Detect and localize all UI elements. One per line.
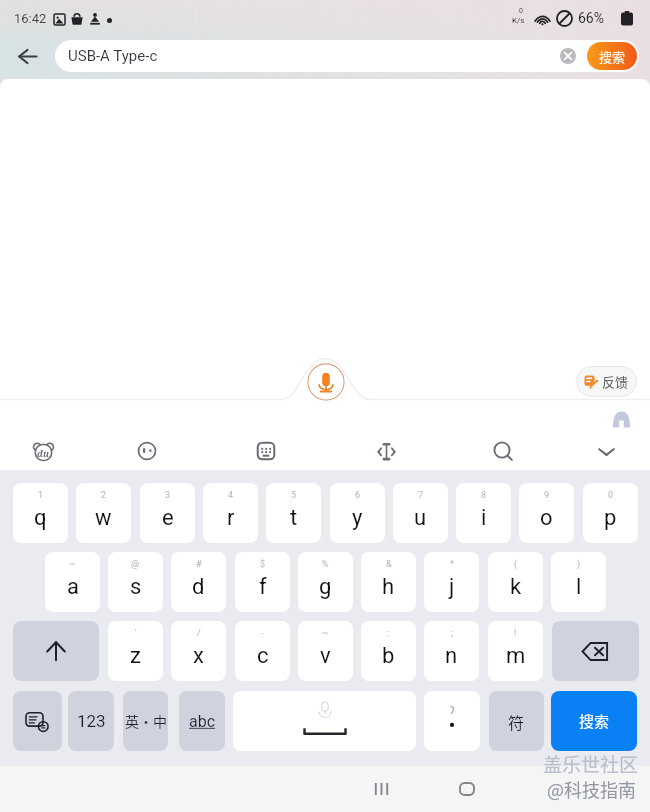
button[interactable]: ) <box>551 552 606 612</box>
button[interactable]: 123 <box>68 691 114 751</box>
button[interactable]: 5 <box>266 483 321 543</box>
staticText: o <box>540 505 553 531</box>
staticText: & <box>386 559 392 570</box>
button[interactable]: 搜索 <box>551 691 637 751</box>
staticText: # <box>196 559 202 570</box>
staticText: z <box>130 643 141 669</box>
staticText: l <box>576 574 582 600</box>
staticText: 7 <box>418 490 424 501</box>
button[interactable]: Baidu input <box>21 429 65 473</box>
button[interactable]: 4 <box>203 483 258 543</box>
staticText: s <box>130 574 142 600</box>
staticText: d <box>192 574 205 600</box>
staticText: t <box>290 505 298 531</box>
staticText: $ <box>260 559 266 570</box>
button[interactable]: 8 <box>456 483 511 543</box>
button[interactable]: Move cursor <box>364 429 408 473</box>
button[interactable]: Keyboard layout <box>244 429 288 473</box>
button[interactable]: Recents <box>361 769 401 809</box>
button[interactable]: 符 <box>489 691 544 751</box>
button[interactable]: Home <box>447 769 487 809</box>
button[interactable]: 英·中 <box>123 691 168 751</box>
staticText: 符 <box>508 710 525 733</box>
staticText: ~ <box>69 559 76 570</box>
button[interactable]: # <box>171 552 226 612</box>
button[interactable]: 0 <box>583 483 638 543</box>
staticText: x <box>193 643 204 669</box>
button[interactable]: $ <box>235 552 290 612</box>
staticText: p <box>604 505 617 531</box>
button[interactable]: @ <box>108 552 163 612</box>
button[interactable]: % <box>298 552 353 612</box>
staticText: r <box>227 505 235 531</box>
button[interactable]: : <box>361 621 416 681</box>
button[interactable]: abc <box>179 691 225 751</box>
staticText: e <box>162 505 174 531</box>
staticText: % <box>322 559 329 570</box>
button[interactable]: ' <box>108 621 163 681</box>
staticText: i <box>481 505 487 531</box>
button[interactable]: 3 <box>140 483 195 543</box>
button[interactable]: 9 <box>519 483 574 543</box>
staticText: 66% <box>578 10 604 26</box>
button[interactable]: ; <box>424 621 479 681</box>
button[interactable]: Voice input <box>307 363 345 401</box>
staticText: 0 <box>608 490 614 501</box>
button[interactable]: Hide keyboard <box>584 429 628 473</box>
staticText: 搜索 <box>599 47 626 66</box>
staticText: u <box>414 505 427 531</box>
staticText: 反馈 <box>602 372 629 391</box>
staticText: 3 <box>165 490 171 501</box>
staticText: ~ <box>322 628 329 639</box>
button[interactable]: USB-A Type-c <box>55 40 639 72</box>
staticText: 1 <box>38 490 44 501</box>
staticText: ) <box>577 559 581 570</box>
staticText: b <box>382 643 395 669</box>
staticText: USB-A Type-c <box>68 47 158 65</box>
staticText: / <box>197 628 201 639</box>
button[interactable]: Clear text <box>556 44 580 68</box>
button[interactable]: Back <box>7 36 47 76</box>
button[interactable]: 2 <box>76 483 131 543</box>
staticText: 8 <box>481 490 487 501</box>
staticText: 5 <box>291 490 297 501</box>
staticText: g <box>319 574 332 600</box>
button[interactable]: Period <box>424 691 480 751</box>
button[interactable]: ~ <box>45 552 100 612</box>
staticText: ; <box>451 628 453 639</box>
button[interactable]: / <box>171 621 226 681</box>
button[interactable]: Switch input <box>13 691 62 751</box>
button[interactable]: 1 <box>13 483 68 543</box>
staticText: K/s <box>512 16 525 25</box>
staticText: @ <box>131 559 140 570</box>
button[interactable]: Space <box>233 691 416 751</box>
button[interactable]: 6 <box>330 483 385 543</box>
staticText: ( <box>514 559 518 570</box>
button[interactable]: Search <box>481 429 525 473</box>
staticText: m <box>506 643 526 669</box>
button[interactable]: - <box>235 621 290 681</box>
staticText: h <box>382 574 395 600</box>
staticText: 盖乐世社区 <box>543 750 639 778</box>
button[interactable]: Emoji <box>125 429 169 473</box>
button[interactable]: 反馈 <box>576 366 637 397</box>
button[interactable]: ~ <box>298 621 353 681</box>
button[interactable]: Shift <box>13 621 99 681</box>
button[interactable]: * <box>424 552 479 612</box>
button[interactable]: 搜索 <box>587 42 637 70</box>
staticText: * <box>450 559 454 570</box>
staticText: a <box>67 574 79 600</box>
button[interactable]: & <box>361 552 416 612</box>
staticText: 英·中 <box>125 711 167 731</box>
staticText: k <box>510 574 522 600</box>
staticText: abc <box>189 712 216 731</box>
button[interactable]: ( <box>488 552 543 612</box>
staticText: c <box>257 643 269 669</box>
staticText: 9 <box>544 490 550 501</box>
button[interactable]: Backspace <box>552 621 639 681</box>
staticText: 搜索 <box>579 710 610 732</box>
button[interactable]: 7 <box>393 483 448 543</box>
staticText: w <box>95 505 112 531</box>
button[interactable]: ! <box>488 621 543 681</box>
staticText: 6 <box>355 490 361 501</box>
